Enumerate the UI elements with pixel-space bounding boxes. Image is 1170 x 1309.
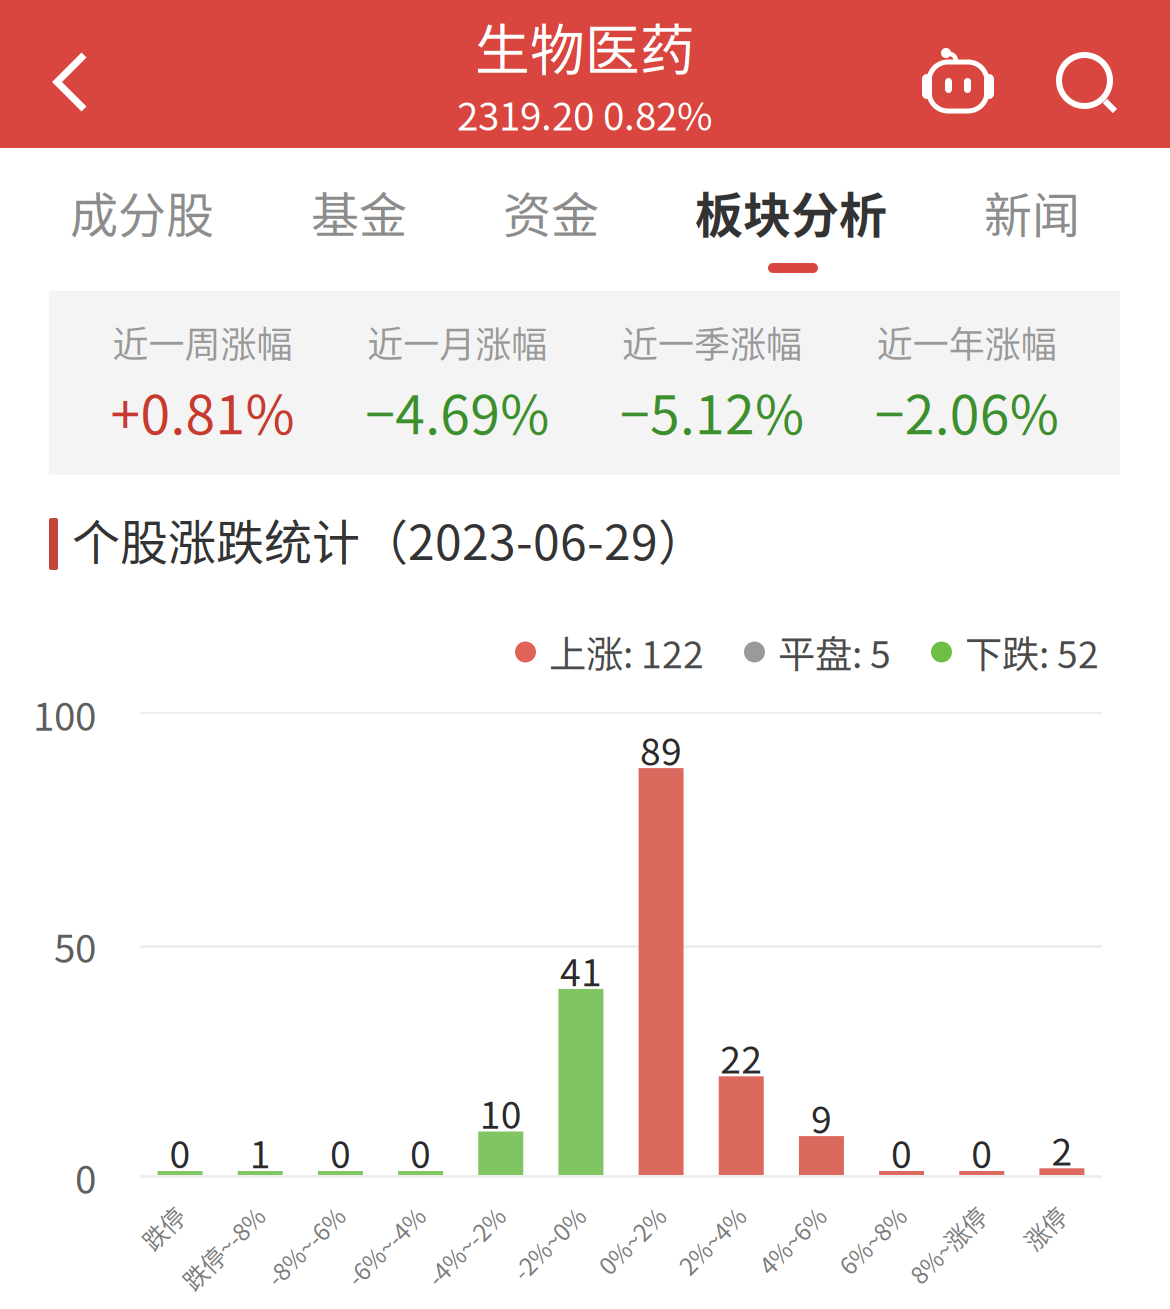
staticText: 近一周涨幅 xyxy=(112,316,292,368)
button[interactable]: 基金 xyxy=(313,173,405,293)
staticText: 8%~涨停 xyxy=(886,1194,982,1228)
staticText: 涨停 xyxy=(1014,1194,1062,1228)
staticText: 近一季涨幅 xyxy=(622,316,802,368)
staticText: 0 xyxy=(971,1125,992,1179)
staticText: 新闻 xyxy=(984,177,1080,246)
button[interactable]: Back xyxy=(0,0,148,148)
button[interactable]: 成分股 xyxy=(71,173,213,293)
staticText: 9 xyxy=(811,1090,832,1144)
staticText: 0%~2% xyxy=(578,1194,661,1228)
staticText: 4%~6% xyxy=(738,1194,821,1228)
staticText: 成分股 xyxy=(70,177,214,246)
staticText: −2.06% xyxy=(875,372,1059,450)
staticText: 50 xyxy=(54,918,96,974)
staticText: -4%~-2% xyxy=(402,1194,501,1228)
staticText: 基金 xyxy=(311,177,407,246)
staticText: −5.12% xyxy=(620,372,804,450)
staticText: 0 xyxy=(170,1125,191,1179)
staticText: 下跌: 52 xyxy=(965,625,1099,679)
staticText: -6%~-4% xyxy=(322,1194,421,1228)
staticText: 上涨: 122 xyxy=(549,625,704,679)
staticText: 2 xyxy=(1051,1122,1072,1176)
staticText: 平盘: 5 xyxy=(778,625,891,679)
button[interactable]: Search xyxy=(1026,0,1170,148)
staticText: 2%~4% xyxy=(658,1194,741,1228)
button[interactable]: 板块分析 xyxy=(697,173,885,293)
staticText: 生物医药 xyxy=(475,6,695,86)
staticText: 个股涨跌统计（2023-06-29） xyxy=(72,504,706,574)
staticText: 6%~8% xyxy=(819,1194,902,1228)
staticText: 89 xyxy=(640,722,682,776)
staticText: -2%~0% xyxy=(490,1194,581,1228)
staticText: 100 xyxy=(33,686,96,742)
staticText: 0 xyxy=(330,1125,351,1179)
staticText: 板块分析 xyxy=(695,177,887,246)
button[interactable]: AI assistant xyxy=(886,0,1026,148)
staticText: 0 xyxy=(410,1125,431,1179)
staticText: 2319.20 0.82% xyxy=(457,86,713,142)
staticText: 资金 xyxy=(503,177,599,246)
staticText: 0 xyxy=(75,1149,96,1205)
staticText: 10 xyxy=(480,1085,522,1140)
staticText: 0 xyxy=(891,1125,912,1179)
staticText: 22 xyxy=(720,1030,762,1084)
staticText: -8%~-6% xyxy=(241,1194,340,1228)
staticText: 41 xyxy=(560,943,602,997)
staticText: −4.69% xyxy=(365,372,549,450)
staticText: +0.81% xyxy=(110,372,294,450)
staticText: 近一月涨幅 xyxy=(367,316,547,368)
button[interactable]: 资金 xyxy=(505,173,597,293)
staticText: 近一年涨幅 xyxy=(877,316,1057,368)
staticText: 跌停~-8% xyxy=(156,1194,260,1228)
staticText: 跌停 xyxy=(132,1194,180,1228)
staticText: 1 xyxy=(250,1125,271,1179)
button[interactable]: 新闻 xyxy=(985,173,1079,293)
